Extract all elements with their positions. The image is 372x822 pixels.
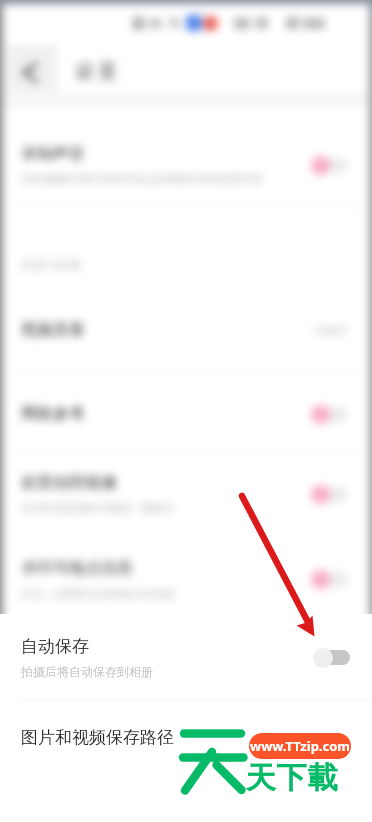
- button[interactable]: Toggle: [311, 569, 348, 590]
- button[interactable]: 前置拍照镜像: [0, 453, 372, 535]
- button[interactable]: Toggle: [311, 404, 348, 425]
- button[interactable]: Auto save toggle: [313, 647, 350, 668]
- staticText: 拍照与录像: [21, 257, 81, 272]
- staticText: 网格参考: [21, 404, 85, 424]
- staticText: 拍摄后将自动保存到相册: [21, 664, 153, 679]
- staticText: 水印与地点信息: [21, 558, 133, 578]
- other: Back: [20, 62, 41, 83]
- button[interactable]: 录制声音: [0, 127, 372, 203]
- staticText: 1080P: [313, 322, 348, 338]
- staticText: 录制声音: [21, 144, 85, 164]
- button[interactable]: 水印与地点信息: [0, 538, 372, 614]
- staticText: 图片和视频保存路径: [21, 727, 174, 748]
- staticText: 录制视频时同时录制声音以及周围的环境背景声音: [21, 172, 263, 186]
- button[interactable]: Toggle: [311, 155, 348, 176]
- staticText: 视频质量: [21, 320, 85, 340]
- staticText: 前置拍照镜像: [21, 473, 117, 493]
- button[interactable]: 图片和视频保存路径: [0, 706, 372, 768]
- button[interactable]: 网格参考: [0, 386, 372, 442]
- button[interactable]: 自动保存: [0, 614, 372, 700]
- staticText: www.TTzip.com: [250, 737, 351, 755]
- button[interactable]: Toggle: [311, 484, 348, 505]
- staticText: 开启 | 拍照时自动添加水印信息: [21, 586, 176, 601]
- staticText: 设置: [73, 60, 119, 84]
- button[interactable]: 视频质量: [0, 302, 372, 358]
- staticText: 自拍时画面保持与预览一致显示: [21, 501, 175, 515]
- staticText: 自动保存: [21, 636, 89, 657]
- staticText: 天下載: [245, 759, 338, 797]
